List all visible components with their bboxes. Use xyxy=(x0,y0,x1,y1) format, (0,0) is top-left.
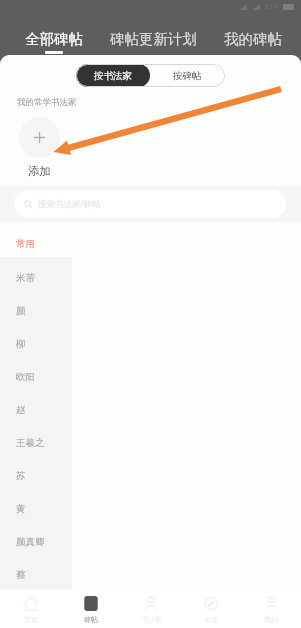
staticText: 碑帖更新计划 xyxy=(110,30,197,48)
staticText: 首页 xyxy=(24,615,38,624)
staticText: 碑帖 xyxy=(84,615,98,624)
button[interactable]: 碑帖更新计划 xyxy=(101,12,206,55)
staticText: 欧阳 xyxy=(16,371,35,383)
staticText: 搜索书法家/碑帖 xyxy=(38,198,101,210)
staticText: 我的常学书法家 xyxy=(17,97,77,108)
staticText: 常用 xyxy=(16,238,35,250)
button[interactable]: 柳 xyxy=(0,327,72,360)
button[interactable]: 苏 xyxy=(0,459,72,492)
staticText: 我的碑帖 xyxy=(224,30,282,48)
staticText: 按书法家 xyxy=(94,70,132,82)
button[interactable]: 添加 xyxy=(19,117,60,158)
staticText: 苏 xyxy=(16,470,26,482)
staticText: 黄 xyxy=(16,503,26,515)
button[interactable]: 欧阳 xyxy=(0,360,72,393)
staticText: 赵 xyxy=(16,404,26,416)
staticText: 我的 xyxy=(264,615,278,624)
staticText: 蔡 xyxy=(16,569,26,581)
button[interactable]: 颜真卿 xyxy=(0,525,72,558)
button[interactable]: 颜 xyxy=(0,294,72,327)
button[interactable]: 碑帖 xyxy=(61,589,121,628)
button[interactable]: 我的碑帖 xyxy=(215,12,291,55)
button[interactable]: 全部碑帖 xyxy=(16,12,92,55)
staticText: 按碑帖 xyxy=(173,70,202,82)
button[interactable]: 米芾 xyxy=(0,262,72,294)
staticText: 颜真卿 xyxy=(16,536,45,548)
button[interactable]: 赵 xyxy=(0,393,72,426)
staticText: 发现 xyxy=(204,615,218,624)
button[interactable]: 王羲之 xyxy=(0,426,72,459)
button[interactable]: 按碑帖 xyxy=(150,64,225,87)
staticText: 书法家 xyxy=(141,615,162,624)
staticText: 米芾 xyxy=(16,272,35,284)
button[interactable]: 按书法家 xyxy=(76,64,150,87)
staticText: 柳 xyxy=(16,338,26,350)
button[interactable]: 蔡 xyxy=(0,558,72,591)
staticText: 颜 xyxy=(16,305,26,317)
staticText: 添加 xyxy=(28,164,51,178)
button[interactable]: 黄 xyxy=(0,492,72,525)
staticText: 王羲之 xyxy=(16,437,45,449)
button[interactable]: 搜索书法家/碑帖 xyxy=(14,190,286,218)
staticText: 全部碑帖 xyxy=(25,30,83,48)
staticText: 93% xyxy=(265,2,278,11)
